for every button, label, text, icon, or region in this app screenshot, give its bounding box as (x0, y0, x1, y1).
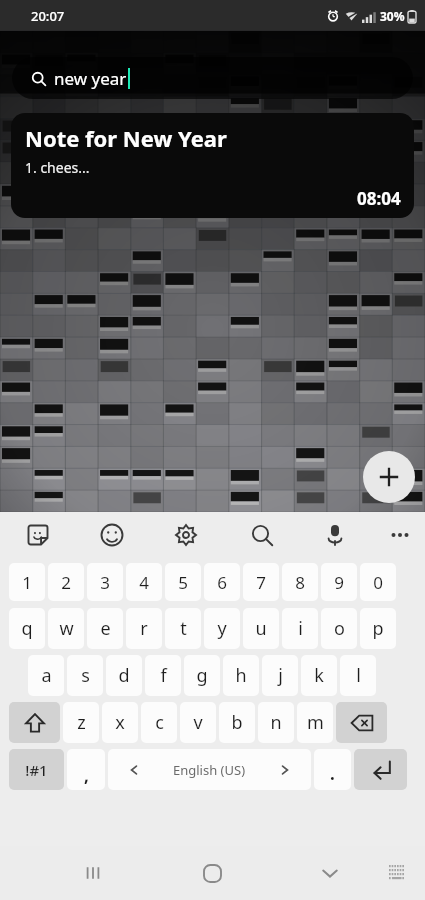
button[interactable]: Settings (168, 517, 204, 553)
button[interactable]: Recents (74, 854, 112, 892)
button[interactable]: b (219, 702, 255, 743)
button[interactable]: e (87, 608, 123, 649)
staticText: 0 (373, 571, 383, 594)
button[interactable]: c (141, 702, 177, 743)
button[interactable]: 8 (282, 563, 318, 601)
button[interactable]: t (165, 608, 201, 649)
button[interactable]: 6 (204, 563, 240, 601)
button[interactable]: d (106, 655, 142, 696)
button[interactable]: x (102, 702, 138, 743)
staticText: 4 (139, 571, 149, 594)
staticText: h (235, 663, 247, 688)
button[interactable]: g (184, 655, 220, 696)
staticText: . (330, 762, 335, 785)
staticText: 3 (100, 571, 110, 594)
staticText: v (193, 710, 203, 735)
button[interactable]: m (297, 702, 333, 743)
button[interactable]: Add note (363, 451, 415, 503)
staticText: 6 (217, 571, 227, 594)
button[interactable]: v (180, 702, 216, 743)
button[interactable]: !#1 (9, 749, 64, 790)
button[interactable]: z (63, 702, 99, 743)
button[interactable]: Voice input (317, 517, 353, 553)
staticText: Note for New Year (25, 123, 227, 153)
button[interactable]: 4 (126, 563, 162, 601)
button[interactable]: i (282, 608, 318, 649)
staticText: p (372, 616, 384, 641)
button[interactable]: . (314, 749, 351, 790)
button[interactable]: k (301, 655, 337, 696)
staticText: o (334, 616, 345, 641)
staticText: f (160, 663, 167, 688)
staticText: 9 (334, 571, 344, 594)
staticText: 08:04 (357, 187, 401, 210)
staticText: t (180, 616, 187, 641)
button[interactable]: n (258, 702, 294, 743)
button[interactable]: j (262, 655, 298, 696)
staticText: 1 (22, 571, 32, 594)
staticText: i (298, 616, 303, 641)
staticText: English (US) (173, 761, 246, 779)
button[interactable]: 1 (9, 563, 45, 601)
staticText: k (314, 663, 324, 688)
button[interactable]: p (360, 608, 396, 649)
button[interactable]: English (US) (108, 749, 311, 790)
button[interactable]: More options (382, 517, 418, 553)
button[interactable]: 2 (48, 563, 84, 601)
button[interactable]: 7 (243, 563, 279, 601)
staticText: n (270, 710, 282, 735)
staticText: s (81, 663, 90, 688)
staticText: d (118, 663, 130, 688)
button[interactable]: , (67, 749, 105, 790)
button[interactable]: 9 (321, 563, 357, 601)
button[interactable]: Change keyboard (381, 857, 413, 889)
staticText: 20:07 (31, 7, 65, 25)
staticText: r (140, 616, 148, 641)
staticText: 8 (295, 571, 305, 594)
button[interactable]: Enter (354, 749, 407, 790)
staticText: new year (54, 67, 127, 90)
button[interactable]: 3 (87, 563, 123, 601)
button[interactable]: Shift (9, 702, 60, 743)
button[interactable]: Note for New Year (11, 113, 414, 218)
button[interactable]: h (223, 655, 259, 696)
staticText: g (196, 663, 208, 688)
button[interactable]: o (321, 608, 357, 649)
staticText: x (115, 710, 125, 735)
button[interactable]: s (67, 655, 103, 696)
staticText: !#1 (25, 760, 48, 780)
staticText: q (21, 616, 33, 641)
button[interactable]: Backspace (336, 702, 387, 743)
button[interactable]: Stickers (20, 517, 56, 553)
button[interactable]: r (126, 608, 162, 649)
button[interactable]: a (28, 655, 64, 696)
button[interactable]: l (340, 655, 376, 696)
button[interactable]: w (48, 608, 84, 649)
button[interactable]: Search (244, 517, 280, 553)
button[interactable]: f (145, 655, 181, 696)
button[interactable]: y (204, 608, 240, 649)
button[interactable]: Emoji (94, 517, 130, 553)
staticText: 1. chees... (25, 158, 90, 177)
staticText: l (356, 663, 361, 688)
staticText: 2 (61, 571, 71, 594)
staticText: z (77, 710, 86, 735)
staticText: 5 (178, 571, 188, 594)
button[interactable]: q (9, 608, 45, 649)
staticText: a (41, 663, 52, 688)
staticText: y (217, 616, 227, 641)
staticText: e (100, 616, 111, 641)
staticText: u (255, 616, 267, 641)
staticText: 30% (380, 8, 405, 24)
staticText: b (231, 710, 243, 735)
button[interactable]: u (243, 608, 279, 649)
staticText: 7 (256, 571, 266, 594)
staticText: w (59, 616, 74, 641)
staticText: j (278, 663, 283, 688)
button[interactable]: Home (193, 854, 231, 892)
staticText: c (155, 710, 164, 735)
button[interactable]: new year (12, 57, 413, 99)
button[interactable]: Hide keyboard (311, 854, 349, 892)
button[interactable]: 5 (165, 563, 201, 601)
button[interactable]: 0 (360, 563, 396, 601)
